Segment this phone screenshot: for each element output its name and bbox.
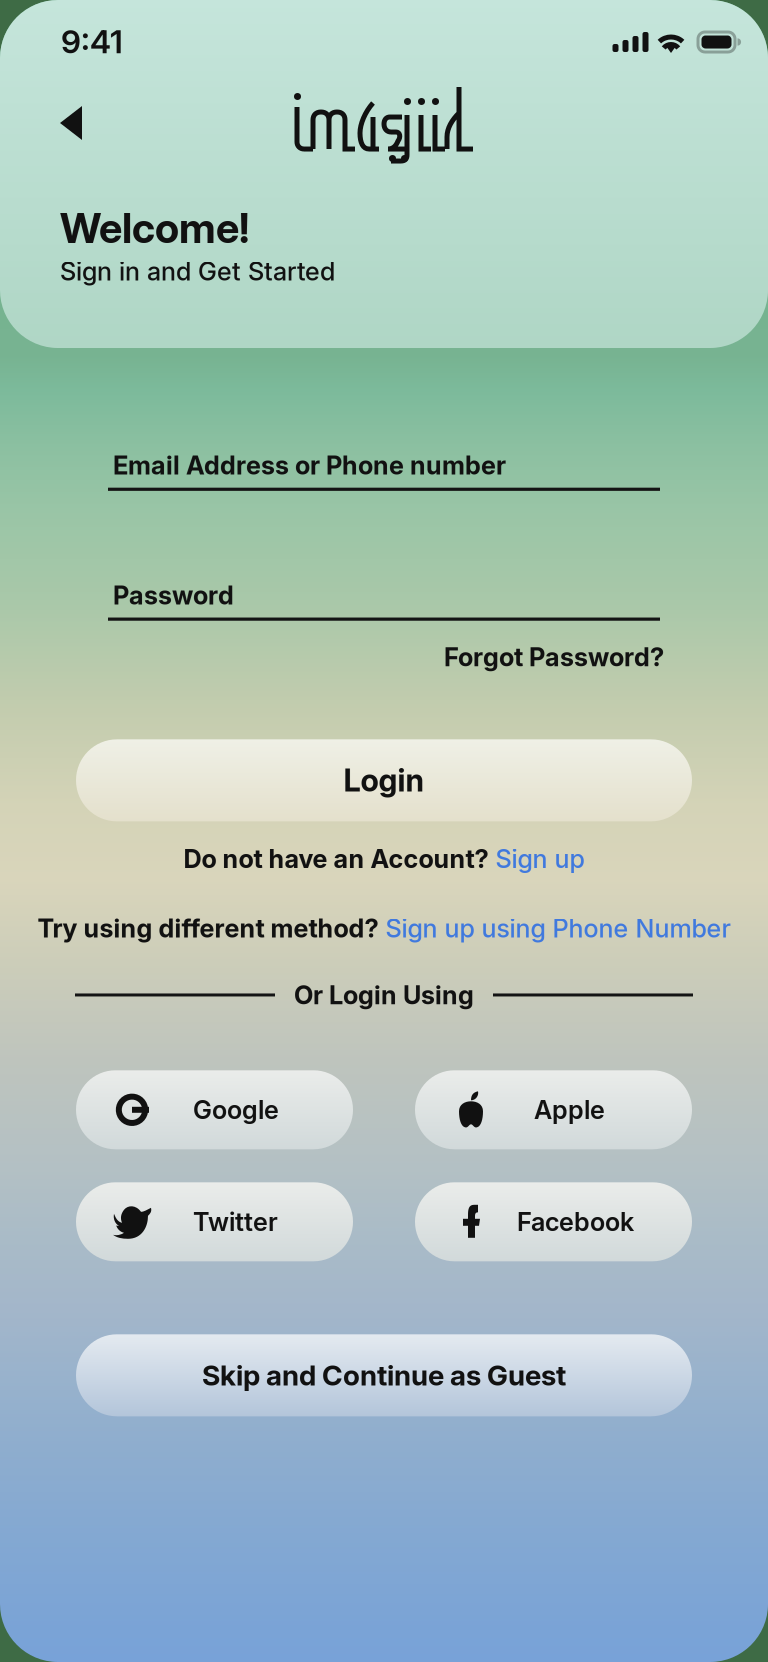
staticText: Login [343,762,424,799]
button[interactable]: Forgot Password? [444,642,664,672]
button[interactable]: Login [76,739,692,821]
staticText: Do not have an Account? [183,843,488,874]
staticText: Facebook [517,1206,634,1237]
staticText: Sign up [488,843,584,874]
staticText: Sign in and Get Started [60,256,335,287]
button[interactable]: Sign up using Phone Number [378,913,730,944]
button[interactable]: Twitter [76,1182,353,1261]
staticText: Skip and Continue as Guest [202,1358,566,1392]
staticText: Welcome! [60,203,249,253]
button[interactable]: Facebook [415,1182,692,1261]
staticText: Apple [534,1094,605,1125]
staticText: Twitter [193,1206,278,1237]
button[interactable]: Apple [415,1070,692,1149]
staticText: Or Login Using [294,980,474,1010]
button[interactable]: Sign up [488,843,584,874]
staticText: Email Address or Phone number [113,450,506,481]
staticText: Password [113,580,234,611]
staticText: 9:41 [61,22,123,61]
staticText: Try using different method? [37,913,378,944]
staticText: Sign up using Phone Number [378,913,730,944]
button[interactable]: Skip and Continue as Guest [76,1334,692,1416]
staticText: Google [193,1094,279,1125]
staticText: Forgot Password? [444,642,664,672]
button[interactable]: Back [46,92,96,154]
button[interactable]: Google [76,1070,353,1149]
